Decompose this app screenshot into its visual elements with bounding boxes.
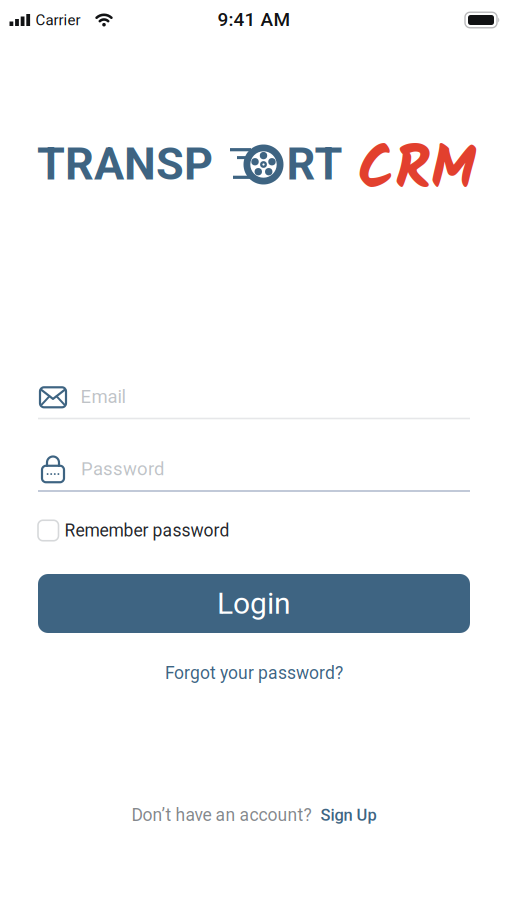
staticText: CRM [357,124,476,220]
staticText: 9:41 AM [217,8,290,31]
button[interactable]: Email [0,369,507,423]
staticText: Remember password [64,520,229,541]
staticText: Don’t have an account? [131,805,311,825]
button[interactable]: Sign Up [320,805,376,825]
button[interactable]: Remember password [0,515,507,545]
staticText: Login [217,586,291,621]
staticText: Password [81,458,164,480]
staticText: Sign Up [320,805,376,825]
button[interactable]: Forgot your password? [165,663,343,683]
staticText: RT [286,138,342,190]
staticText: TRANSP [37,138,213,190]
button[interactable]: Login [38,574,470,633]
button[interactable]: Password [0,437,507,499]
staticText: Forgot your password? [165,663,343,683]
staticText: Carrier [35,11,80,29]
staticText: Email [80,386,125,408]
